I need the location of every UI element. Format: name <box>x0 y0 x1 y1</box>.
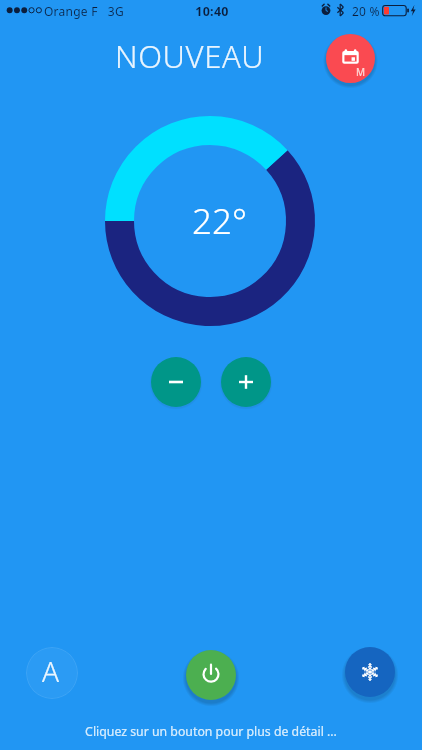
button[interactable]: Diminuer la température <box>151 357 201 407</box>
staticText: Orange F 3G <box>44 3 124 19</box>
staticText: A <box>42 652 60 690</box>
staticText: Cliquez sur un bouton pour plus de détai… <box>0 723 422 740</box>
button[interactable]: Mode refroidissement <box>345 647 395 697</box>
button[interactable]: Calendrier <box>326 34 375 83</box>
staticText: 10:40 <box>1 3 422 20</box>
staticText: NOUVEAU <box>115 35 265 77</box>
button[interactable]: Augmenter la température <box>221 357 271 407</box>
staticText: 20 % <box>352 3 380 19</box>
staticText: 22° <box>192 197 247 245</box>
button[interactable]: Marche / Arrêt <box>186 650 236 700</box>
staticText: M <box>356 65 366 79</box>
button[interactable]: A <box>26 647 78 699</box>
